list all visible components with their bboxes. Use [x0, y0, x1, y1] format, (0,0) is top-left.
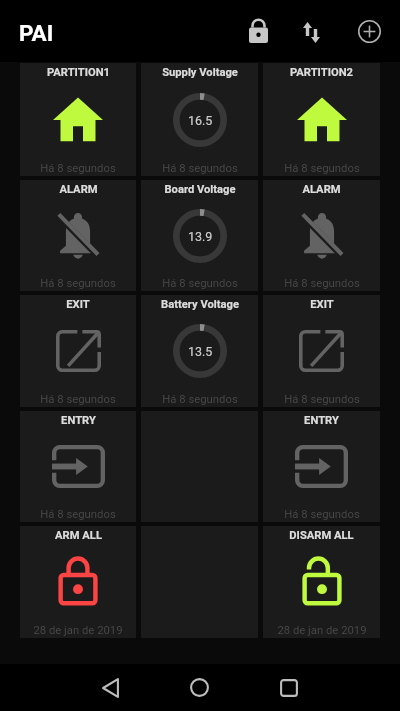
button[interactable]: Supply Voltage [141, 63, 258, 176]
button[interactable]: ARM ALL [20, 526, 136, 638]
staticText: DISARM ALL [289, 529, 354, 542]
button[interactable]: Add [345, 7, 393, 55]
button[interactable]: Home [155, 664, 244, 711]
button[interactable]: Lock [234, 7, 282, 55]
staticText: PARTITION2 [290, 66, 353, 79]
button[interactable]: Battery Voltage [141, 295, 258, 407]
staticText: Há 8 segundos [284, 393, 360, 406]
staticText: Há 8 segundos [40, 508, 116, 521]
button[interactable]: PARTITION1 [20, 63, 136, 176]
staticText: 16.5 [188, 113, 213, 128]
button[interactable]: Recents [244, 664, 333, 711]
staticText: ALARM [302, 183, 341, 196]
button[interactable]: Import export [287, 8, 335, 56]
staticText: 28 de jan de 2019 [33, 624, 123, 637]
staticText: 13.5 [188, 344, 213, 359]
button[interactable]: EXIT [20, 295, 136, 407]
staticText: ENTRY [61, 414, 96, 427]
button[interactable]: EXIT [263, 295, 380, 407]
staticText: PARTITION1 [47, 66, 110, 79]
staticText: EXIT [66, 298, 90, 311]
staticText: EXIT [310, 298, 334, 311]
button[interactable]: ALARM [20, 180, 136, 291]
staticText: ALARM [59, 183, 98, 196]
staticText: 28 de jan de 2019 [277, 624, 367, 637]
button[interactable]: ALARM [263, 180, 380, 291]
button[interactable]: ENTRY [263, 411, 380, 522]
button[interactable]: Back [66, 664, 155, 711]
button[interactable]: DISARM ALL [263, 526, 380, 638]
staticText: Há 8 segundos [40, 277, 116, 290]
staticText: Board Voltage [164, 183, 236, 196]
staticText: Há 8 segundos [162, 393, 238, 406]
button[interactable]: PARTITION2 [263, 63, 380, 176]
staticText: Há 8 segundos [162, 162, 238, 175]
staticText: ARM ALL [55, 529, 102, 542]
staticText: Há 8 segundos [284, 162, 360, 175]
staticText: Há 8 segundos [284, 508, 360, 521]
staticText: Há 8 segundos [162, 277, 238, 290]
staticText: Battery Voltage [161, 298, 239, 311]
staticText: Há 8 segundos [40, 162, 116, 175]
staticText: ENTRY [304, 414, 339, 427]
button[interactable]: ENTRY [20, 411, 136, 522]
staticText: Há 8 segundos [40, 393, 116, 406]
staticText: 13.9 [188, 229, 213, 244]
staticText: PAI [19, 20, 54, 46]
staticText: Há 8 segundos [284, 277, 360, 290]
button[interactable]: Board Voltage [141, 180, 258, 291]
staticText: Supply Voltage [162, 66, 238, 79]
